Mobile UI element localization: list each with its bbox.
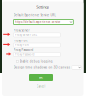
button[interactable]: Proxy Server URL [13, 33, 60, 37]
button[interactable]: Save [29, 74, 53, 81]
staticText: Cancel [36, 85, 45, 88]
button[interactable]: Proxy Port [13, 43, 60, 47]
staticText: https://default.experience.service [15, 20, 61, 24]
button[interactable]: https://default.experience.service [13, 19, 73, 25]
button[interactable] [72, 66, 81, 69]
staticText: Default Experience Service URL [13, 13, 55, 17]
button[interactable]: Cancel [29, 84, 53, 88]
staticText: Proxy Port [13, 39, 27, 42]
staticText: Proxy Server URL [15, 33, 37, 37]
staticText: Proxy Server [13, 29, 29, 32]
staticText: Proxy Password [13, 48, 33, 52]
staticText: Enable debug logging [20, 60, 53, 63]
staticText: Proxy Port [15, 43, 29, 47]
staticText: Design time shadows on 3D canvas [13, 66, 70, 69]
staticText: Save [38, 76, 43, 79]
button[interactable]: Proxy Password [13, 52, 60, 57]
button[interactable]: Enable debug logging [16, 60, 53, 63]
staticText: Settings [36, 4, 49, 9]
staticText: Proxy Password [15, 53, 35, 56]
